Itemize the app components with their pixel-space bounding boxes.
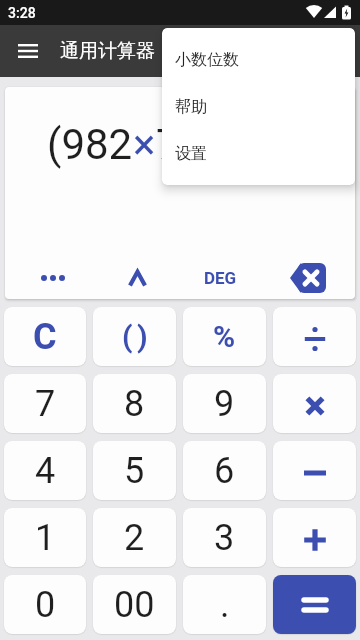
staticText: 设置: [175, 144, 207, 164]
staticText: 3:28: [8, 5, 36, 21]
staticText: C: [33, 316, 57, 358]
staticText: 小数位数: [175, 50, 239, 70]
button[interactable]: [267, 257, 355, 299]
button[interactable]: 设置: [162, 130, 355, 177]
button[interactable]: 00: [93, 575, 176, 634]
staticText: 00: [114, 584, 155, 626]
staticText: DEG: [204, 268, 237, 288]
staticText: 9: [214, 383, 235, 425]
staticText: 帮助: [175, 97, 207, 117]
button[interactable]: [273, 441, 356, 500]
button[interactable]: 9: [183, 374, 266, 433]
staticText: 7: [35, 383, 56, 425]
staticText: (982: [47, 120, 133, 169]
staticText: 8: [124, 383, 145, 425]
button[interactable]: [273, 508, 356, 567]
button[interactable]: 小数位数: [162, 36, 355, 83]
staticText: .: [220, 584, 230, 626]
button[interactable]: 5: [93, 441, 176, 500]
button[interactable]: [14, 37, 42, 65]
staticText: (: [122, 319, 133, 354]
button[interactable]: .: [183, 575, 266, 634]
staticText: ×: [133, 120, 156, 169]
button[interactable]: 帮助: [162, 83, 355, 130]
button[interactable]: C: [4, 307, 86, 366]
button[interactable]: 8: [93, 374, 176, 433]
button[interactable]: 2: [93, 508, 176, 567]
staticText: 5: [124, 450, 145, 492]
button[interactable]: 0: [4, 575, 86, 634]
button[interactable]: %: [183, 307, 266, 366]
staticText: %: [213, 319, 236, 354]
button[interactable]: [273, 374, 356, 433]
staticText: 0: [35, 584, 56, 626]
button[interactable]: [273, 307, 356, 366]
staticText: 2: [124, 517, 145, 559]
staticText: 4: [35, 450, 56, 492]
button[interactable]: [92, 257, 179, 299]
button[interactable]: (: [93, 307, 176, 366]
button[interactable]: [5, 257, 92, 299]
button[interactable]: 6: [183, 441, 266, 500]
staticText: 7: [156, 120, 180, 169]
button[interactable]: DEG: [179, 257, 267, 299]
button[interactable]: 3: [183, 508, 266, 567]
staticText: 6: [214, 450, 235, 492]
button[interactable]: 7: [4, 374, 86, 433]
button[interactable]: [273, 575, 356, 634]
staticText: 通用计算器: [60, 39, 155, 63]
button[interactable]: 4: [4, 441, 86, 500]
button[interactable]: 1: [4, 508, 86, 567]
staticText: 1: [35, 517, 56, 559]
staticText: ): [137, 319, 148, 354]
staticText: 3: [214, 517, 235, 559]
